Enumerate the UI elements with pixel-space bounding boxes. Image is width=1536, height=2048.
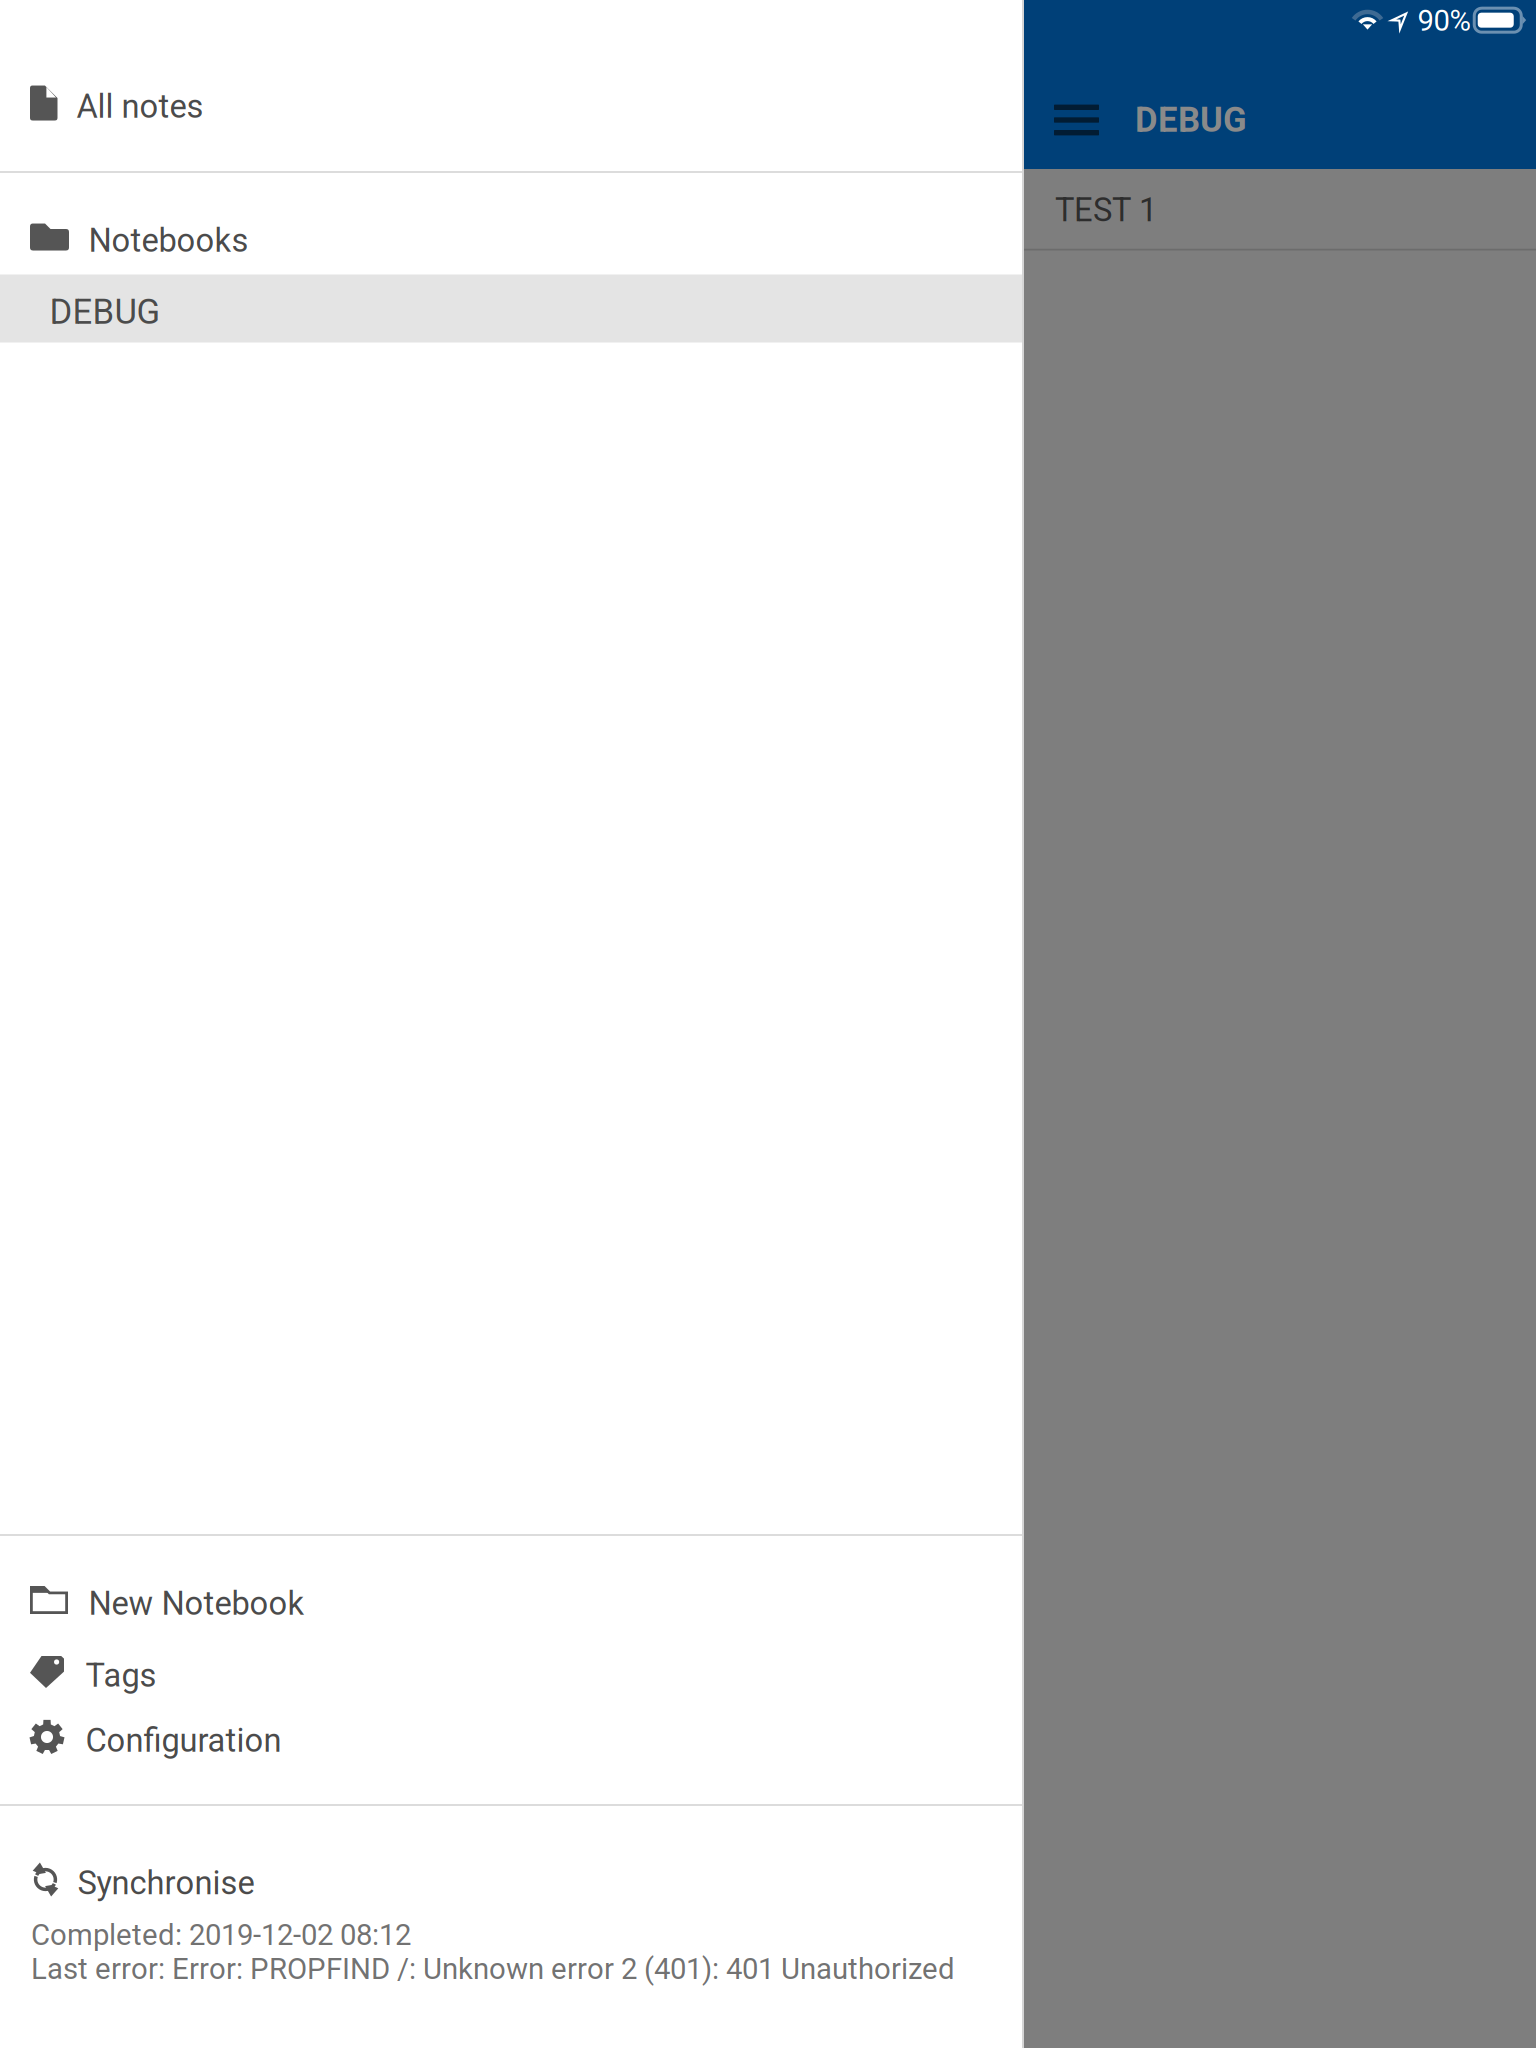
button[interactable]: Configuration (0, 1704, 1022, 1770)
staticText: Last error: Error: PROPFIND /: Unknown e… (31, 1952, 955, 1986)
button[interactable]: Notebooks (0, 200, 1022, 274)
staticText: TEST 1 (1055, 191, 1157, 229)
staticText: Completed: 2019-12-02 08:12 (31, 1918, 411, 1952)
button[interactable]: DEBUG (0, 274, 1022, 342)
button[interactable]: Tags (0, 1639, 1022, 1705)
staticText: DEBUG (1135, 100, 1247, 140)
button[interactable]: New Notebook (0, 1567, 1022, 1633)
staticText: Notebooks (88, 221, 248, 260)
button[interactable]: All notes (0, 58, 1022, 148)
staticText: New Notebook (88, 1584, 304, 1623)
staticText: Tags (85, 1656, 156, 1695)
staticText: Configuration (85, 1721, 281, 1760)
button[interactable]: Menu (1037, 85, 1115, 155)
button[interactable]: TEST 1 (1024, 169, 1536, 251)
staticText: DEBUG (49, 292, 160, 332)
button[interactable]: Synchronise (0, 1848, 1022, 1910)
staticText: 90% (1417, 3, 1470, 38)
staticText: Synchronise (77, 1864, 254, 1902)
staticText: All notes (76, 87, 203, 126)
